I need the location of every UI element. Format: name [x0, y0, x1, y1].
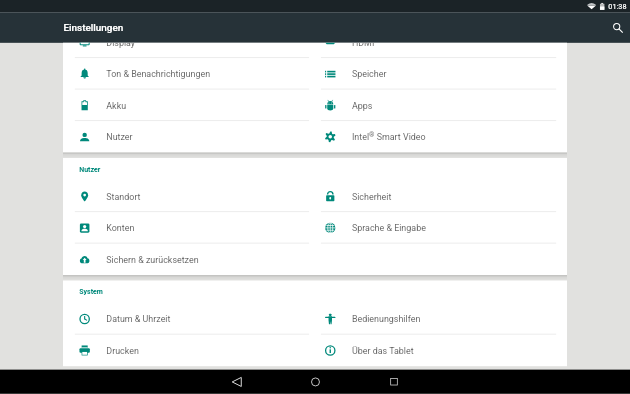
staticText: System: [79, 288, 103, 296]
button[interactable]: Suche: [606, 16, 629, 39]
button[interactable]: Konten: [63, 212, 315, 244]
button[interactable]: Speicher: [315, 58, 567, 90]
staticText: Ton & Benachrichtigungen: [106, 69, 210, 79]
button[interactable]: Startbildschirm: [303, 370, 327, 394]
staticText: Drucken: [106, 345, 139, 356]
staticText: Sichern & zurücksetzen: [106, 254, 199, 265]
button[interactable]: HDMI: [315, 43, 567, 58]
button[interactable]: Apps: [315, 90, 567, 121]
staticText: Nutzer: [106, 132, 133, 142]
button[interactable]: Display: [63, 43, 315, 58]
button[interactable]: Drucken: [63, 335, 315, 366]
staticText: Nutzer: [79, 165, 100, 174]
staticText: Über das Tablet: [352, 345, 414, 356]
staticText: Speicher: [352, 69, 387, 79]
staticText: Sicherheit: [352, 191, 392, 202]
staticText: Einstellungen: [63, 22, 123, 33]
button[interactable]: Intel® Smart Video: [315, 121, 567, 153]
staticText: HDMI: [352, 43, 374, 48]
staticText: Intel® Smart Video: [352, 131, 426, 143]
staticText: Akku: [106, 100, 126, 111]
staticText: Display: [106, 43, 135, 48]
staticText: 01:38: [608, 2, 626, 10]
button[interactable]: Zurück: [224, 370, 248, 394]
button[interactable]: Standort: [63, 181, 315, 212]
staticText: Standort: [106, 191, 141, 202]
button[interactable]: Akku: [63, 90, 315, 121]
button[interactable]: Ton & Benachrichtigungen: [63, 58, 315, 90]
button[interactable]: Nutzer: [63, 121, 315, 153]
button[interactable]: Zuletzt verwendet: [382, 370, 406, 394]
button[interactable]: Sicherheit: [315, 181, 567, 212]
button[interactable]: Sprache & Eingabe: [315, 212, 567, 244]
staticText: Konten: [106, 223, 134, 233]
staticText: Datum & Uhrzeit: [106, 314, 171, 324]
staticText: Bedienungshilfen: [352, 314, 420, 324]
button[interactable]: Datum & Uhrzeit: [63, 303, 315, 335]
staticText: Sprache & Eingabe: [352, 223, 426, 233]
button[interactable]: Sichern & zurücksetzen: [63, 244, 315, 275]
button[interactable]: Über das Tablet: [315, 335, 567, 366]
button[interactable]: Bedienungshilfen: [315, 303, 567, 335]
staticText: Apps: [352, 100, 373, 111]
